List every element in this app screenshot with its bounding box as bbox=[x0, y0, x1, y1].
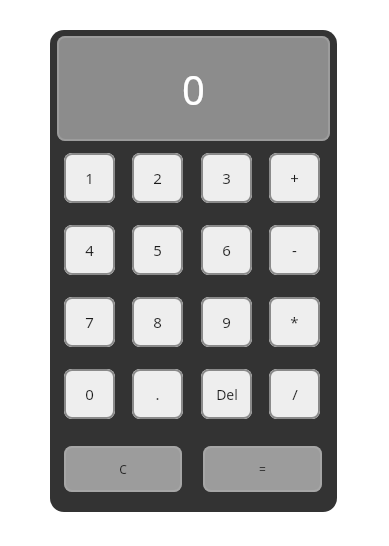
staticText: 7 bbox=[85, 312, 94, 332]
staticText: 4 bbox=[85, 240, 94, 260]
staticText: * bbox=[290, 312, 299, 332]
staticText: 2 bbox=[153, 168, 162, 188]
staticText: 1 bbox=[85, 168, 94, 188]
button[interactable]: + bbox=[269, 153, 320, 203]
staticText: - bbox=[292, 240, 297, 260]
staticText: = bbox=[259, 461, 266, 477]
button[interactable]: 4 bbox=[64, 225, 115, 275]
button[interactable]: - bbox=[269, 225, 320, 275]
button[interactable]: / bbox=[269, 369, 320, 419]
button[interactable]: . bbox=[132, 369, 183, 419]
button[interactable]: C bbox=[64, 446, 182, 492]
staticText: Del bbox=[216, 385, 238, 404]
staticText: 0 bbox=[85, 384, 94, 404]
button[interactable]: 8 bbox=[132, 297, 183, 347]
button[interactable]: 5 bbox=[132, 225, 183, 275]
staticText: / bbox=[292, 384, 298, 404]
button[interactable]: * bbox=[269, 297, 320, 347]
button[interactable]: = bbox=[203, 446, 322, 492]
button[interactable]: 3 bbox=[201, 153, 252, 203]
staticText: 8 bbox=[153, 312, 162, 332]
button[interactable]: 2 bbox=[132, 153, 183, 203]
button[interactable]: 0 bbox=[64, 369, 115, 419]
staticText: 0 bbox=[182, 62, 205, 116]
staticText: 9 bbox=[222, 312, 231, 332]
button[interactable]: Del bbox=[201, 369, 252, 419]
button[interactable]: 7 bbox=[64, 297, 115, 347]
button[interactable]: 6 bbox=[201, 225, 252, 275]
button[interactable]: 1 bbox=[64, 153, 115, 203]
staticText: + bbox=[290, 168, 299, 188]
staticText: 3 bbox=[222, 168, 231, 188]
staticText: 5 bbox=[153, 240, 162, 260]
staticText: C bbox=[119, 461, 127, 477]
staticText: . bbox=[155, 384, 160, 404]
button[interactable]: 9 bbox=[201, 297, 252, 347]
staticText: 6 bbox=[222, 240, 231, 260]
